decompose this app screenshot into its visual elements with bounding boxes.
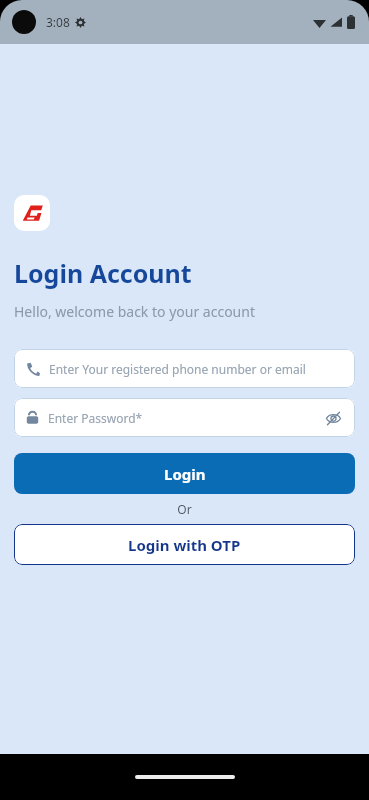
staticText: Hello, welcome back to your account [14, 302, 255, 321]
button[interactable]: Login with OTP [14, 524, 355, 565]
staticText: Login with OTP [128, 535, 241, 555]
staticText: Login [164, 464, 206, 484]
staticText: Enter Password* [48, 410, 143, 426]
button[interactable]: Login [14, 453, 355, 494]
staticText: 3:08 [46, 14, 70, 30]
staticText: Login Account [14, 256, 192, 290]
button[interactable]: Enter Password* [14, 398, 355, 437]
button[interactable]: Show password [323, 408, 343, 428]
staticText: Or [14, 501, 355, 517]
staticText: Enter Your registered phone number or em… [49, 361, 306, 377]
button[interactable]: Enter Your registered phone number or em… [14, 349, 355, 388]
